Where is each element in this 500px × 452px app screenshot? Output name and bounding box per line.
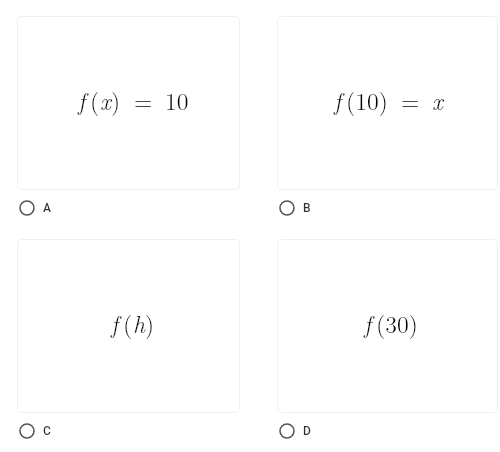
staticText: f (111, 306, 119, 340)
button[interactable]: Answer option D (277, 239, 498, 413)
button[interactable]: C (17, 421, 61, 441)
button[interactable]: Answer option C (17, 239, 240, 413)
button[interactable]: A (17, 198, 61, 218)
staticText: 10 (165, 83, 189, 117)
staticText: h (133, 306, 145, 340)
staticText: ( (90, 83, 100, 117)
button[interactable]: B (277, 198, 321, 218)
staticText: D (303, 424, 311, 438)
staticText: f (334, 83, 342, 117)
staticText: f (78, 83, 86, 117)
staticText: A (43, 201, 51, 215)
staticText: B (303, 201, 311, 215)
button[interactable]: Answer option B (277, 16, 498, 190)
staticText: ) (111, 83, 121, 117)
button[interactable]: D (277, 421, 321, 441)
staticText: x (100, 83, 111, 117)
staticText: = (134, 83, 153, 117)
staticText: ( (123, 306, 133, 340)
staticText: (30) (376, 306, 418, 340)
staticText: f (364, 306, 372, 340)
staticText: x (432, 83, 443, 117)
staticText: C (43, 424, 51, 438)
staticText: ) (145, 306, 155, 340)
staticText: (10) (346, 83, 388, 117)
staticText: = (401, 83, 420, 117)
button[interactable]: Answer option A (17, 16, 240, 190)
